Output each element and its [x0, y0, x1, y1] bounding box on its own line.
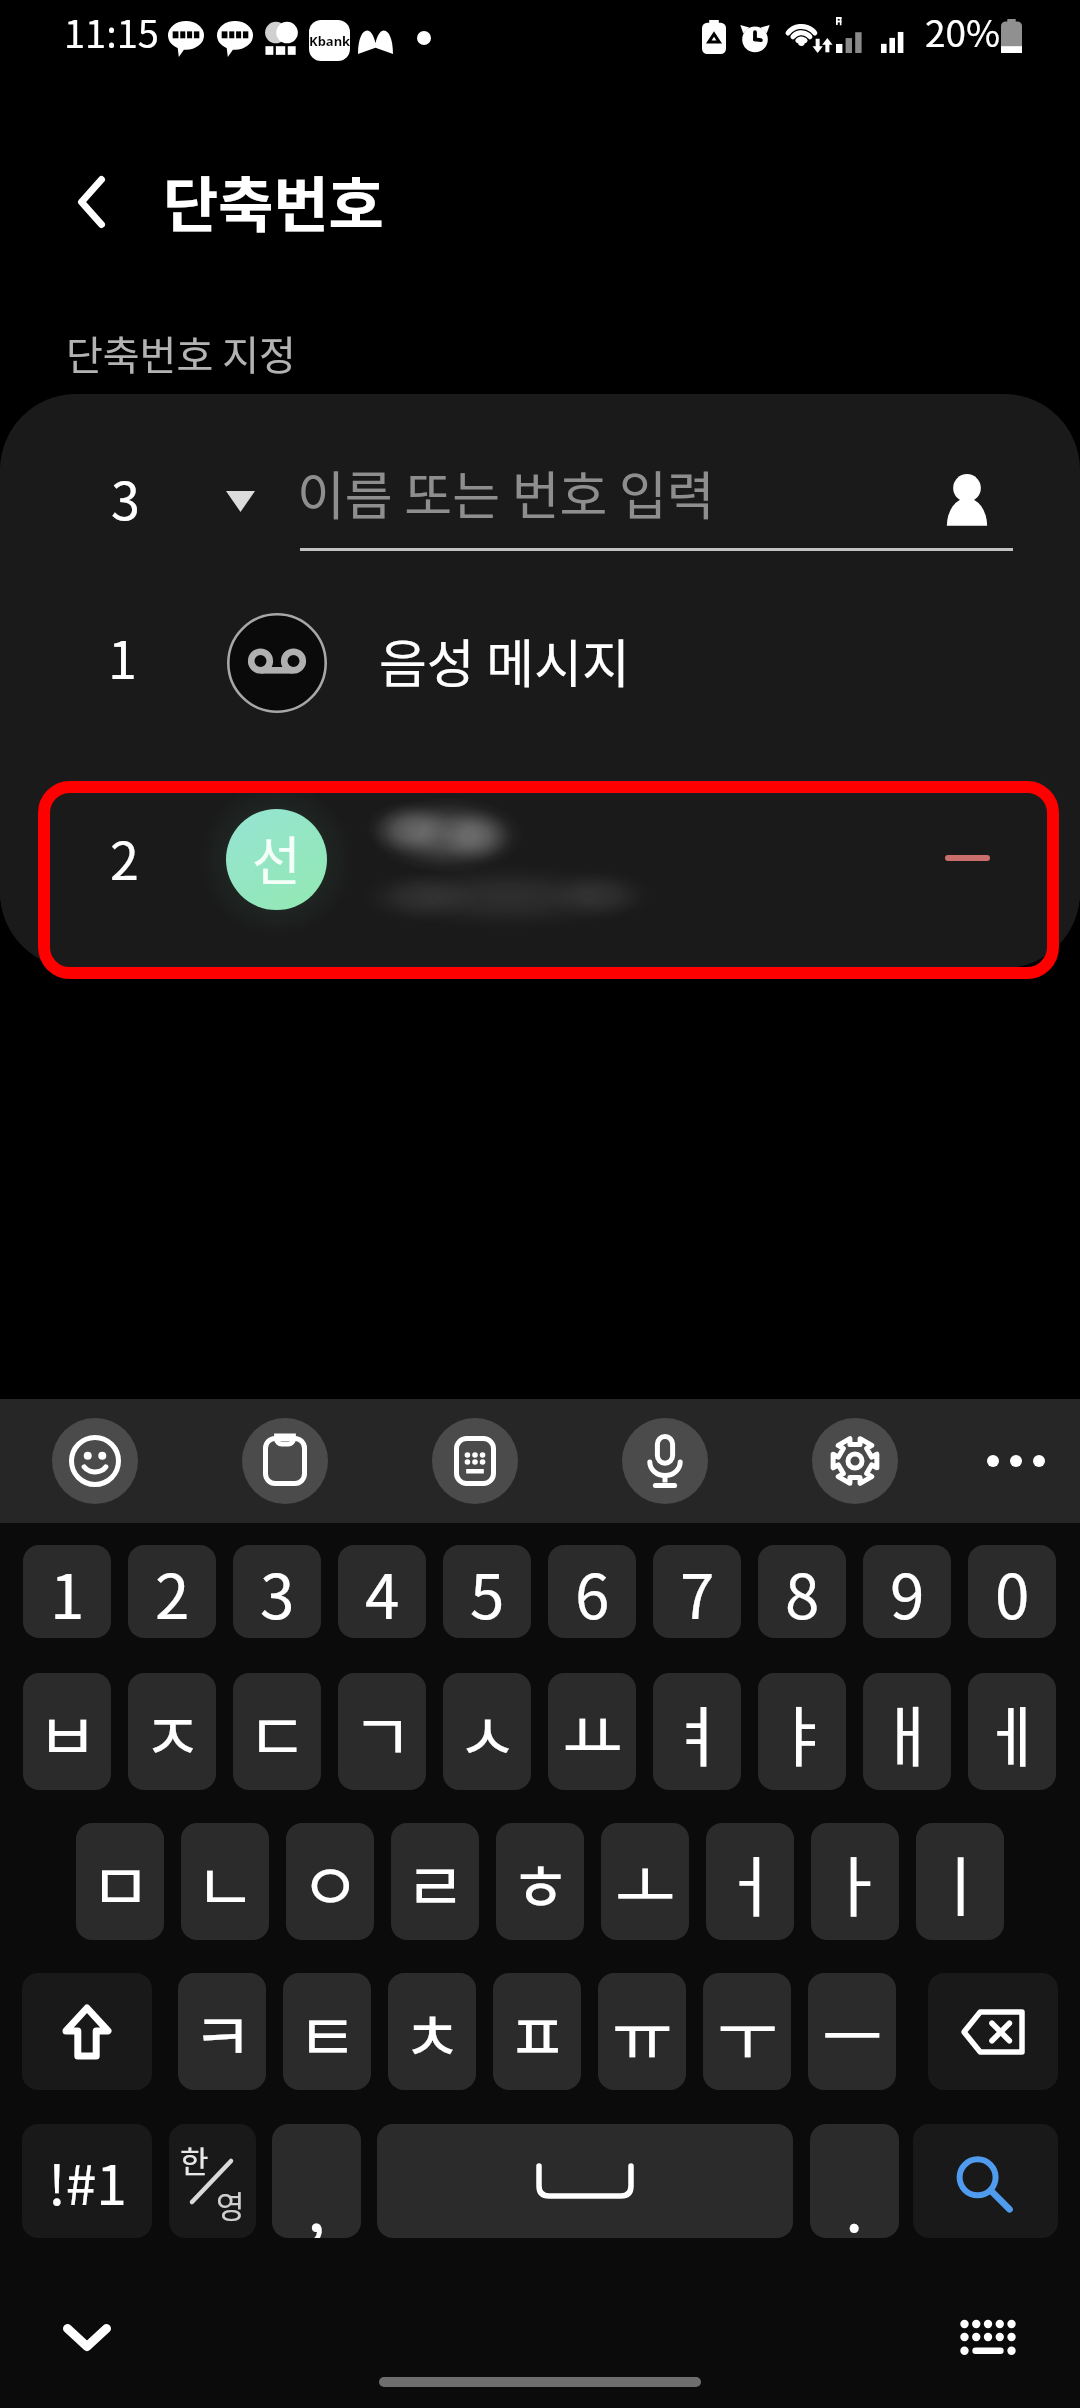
staticText: 11:15: [64, 4, 159, 59]
staticText: ㄱ: [352, 1684, 413, 1780]
button[interactable]: Open contacts: [920, 455, 1014, 549]
button[interactable]: ㅊ: [388, 1973, 476, 2090]
button[interactable]: ㅋ: [178, 1973, 266, 2090]
staticText: 영: [216, 2182, 245, 2227]
staticText: 3: [260, 1547, 295, 1637]
button[interactable]: ㅈ: [128, 1673, 216, 1790]
button[interactable]: Space: [377, 2124, 793, 2238]
staticText: ㅏ: [825, 1834, 886, 1930]
button[interactable]: ㅁ: [76, 1823, 164, 1940]
button[interactable]: ㅣ: [916, 1823, 1004, 1940]
staticText: 8: [785, 1547, 820, 1637]
button[interactable]: 2: [128, 1545, 216, 1638]
staticText: 이름 또는 번호 입력: [297, 455, 715, 530]
button[interactable]: ㅕ: [653, 1673, 741, 1790]
button[interactable]: ㅓ: [706, 1823, 794, 1940]
button[interactable]: ㅂ: [23, 1673, 111, 1790]
staticText: ㅐ: [877, 1684, 938, 1780]
button[interactable]: ,: [272, 2124, 361, 2238]
button[interactable]: ㅛ: [548, 1673, 636, 1790]
button[interactable]: 7: [653, 1545, 741, 1638]
button[interactable]: 1: [0, 594, 1080, 774]
staticText: ㅑ: [772, 1684, 833, 1780]
button[interactable]: Search: [913, 2124, 1058, 2238]
staticText: 7: [680, 1547, 715, 1637]
staticText: ㅋ: [192, 1984, 253, 2080]
button[interactable]: ㅏ: [811, 1823, 899, 1940]
button[interactable]: ㅇ: [286, 1823, 374, 1940]
staticText: ㄷ: [247, 1684, 308, 1780]
button[interactable]: Clipboard: [242, 1418, 328, 1504]
staticText: 9: [890, 1547, 925, 1637]
button[interactable]: ㅠ: [598, 1973, 686, 2090]
staticText: .: [845, 2155, 864, 2238]
staticText: ㅍ: [507, 1984, 568, 2080]
button[interactable]: 4: [338, 1545, 426, 1638]
button[interactable]: Voice input: [622, 1418, 708, 1504]
staticText: ,: [307, 2155, 326, 2238]
staticText: 선: [252, 820, 301, 897]
button[interactable]: ㄴ: [181, 1823, 269, 1940]
staticText: 0: [995, 1547, 1030, 1637]
staticText: ㄴ: [195, 1834, 256, 1930]
staticText: 3: [111, 460, 140, 535]
button[interactable]: 6: [548, 1545, 636, 1638]
staticText: ㅁ: [90, 1834, 151, 1930]
staticText: ㅂ: [37, 1684, 98, 1780]
button[interactable]: Emoji: [52, 1418, 138, 1504]
button[interactable]: Back: [41, 152, 141, 252]
button[interactable]: Remove speed dial: [913, 806, 1021, 910]
staticText: ㅔ: [982, 1684, 1043, 1780]
button[interactable]: ㅍ: [493, 1973, 581, 2090]
button[interactable]: Symbols: [22, 2124, 152, 2238]
staticText: ㅡ: [822, 1984, 883, 2080]
staticText: ㅊ: [402, 1984, 463, 2080]
staticText: 한: [180, 2137, 209, 2182]
button[interactable]: Choose speed dial number: [190, 459, 290, 543]
staticText: !#1: [48, 2141, 127, 2221]
button[interactable]: Switch language: [169, 2124, 256, 2238]
staticText: 단축번호 지정: [66, 324, 296, 382]
button[interactable]: 1: [23, 1545, 111, 1638]
button[interactable]: 5: [443, 1545, 531, 1638]
button[interactable]: Keyboard modes: [432, 1418, 518, 1504]
button[interactable]: 2: [0, 774, 1080, 968]
button[interactable]: 0: [968, 1545, 1056, 1638]
staticText: 1: [108, 619, 137, 694]
staticText: 5: [470, 1547, 505, 1637]
button[interactable]: 3: [0, 394, 1080, 594]
button[interactable]: ㅔ: [968, 1673, 1056, 1790]
button[interactable]: ㅎ: [496, 1823, 584, 1940]
button[interactable]: More options: [973, 1418, 1059, 1504]
button[interactable]: Backspace: [928, 1973, 1058, 2090]
button[interactable]: ㄱ: [338, 1673, 426, 1790]
staticText: Kbank: [309, 32, 350, 50]
button[interactable]: 8: [758, 1545, 846, 1638]
button[interactable]: ㅜ: [703, 1973, 791, 2090]
button[interactable]: ㅌ: [283, 1973, 371, 2090]
staticText: ㅠ: [612, 1984, 673, 2080]
button[interactable]: ㅐ: [863, 1673, 951, 1790]
button[interactable]: .: [810, 2124, 899, 2238]
button[interactable]: 9: [863, 1545, 951, 1638]
staticText: ㅛ: [562, 1684, 623, 1780]
button[interactable]: Settings: [812, 1418, 898, 1504]
button[interactable]: ㅗ: [601, 1823, 689, 1940]
button[interactable]: ㅡ: [808, 1973, 896, 2090]
button[interactable]: 3: [233, 1545, 321, 1638]
staticText: 2: [155, 1547, 190, 1637]
staticText: 1: [50, 1547, 85, 1637]
staticText: ㅣ: [930, 1834, 991, 1930]
staticText: ㅜ: [717, 1984, 778, 2080]
button[interactable]: ㅅ: [443, 1673, 531, 1790]
button[interactable]: ㄷ: [233, 1673, 321, 1790]
button[interactable]: Shift: [22, 1973, 152, 2090]
staticText: ㅌ: [297, 1984, 358, 2080]
staticText: ㅅ: [457, 1684, 518, 1780]
button[interactable]: ㅑ: [758, 1673, 846, 1790]
button[interactable]: Hide keyboard: [47, 2297, 127, 2377]
staticText: ㅇ: [300, 1834, 361, 1930]
button[interactable]: Change keyboard: [948, 2297, 1028, 2377]
staticText: ㅗ: [615, 1834, 676, 1930]
button[interactable]: ㄹ: [391, 1823, 479, 1940]
